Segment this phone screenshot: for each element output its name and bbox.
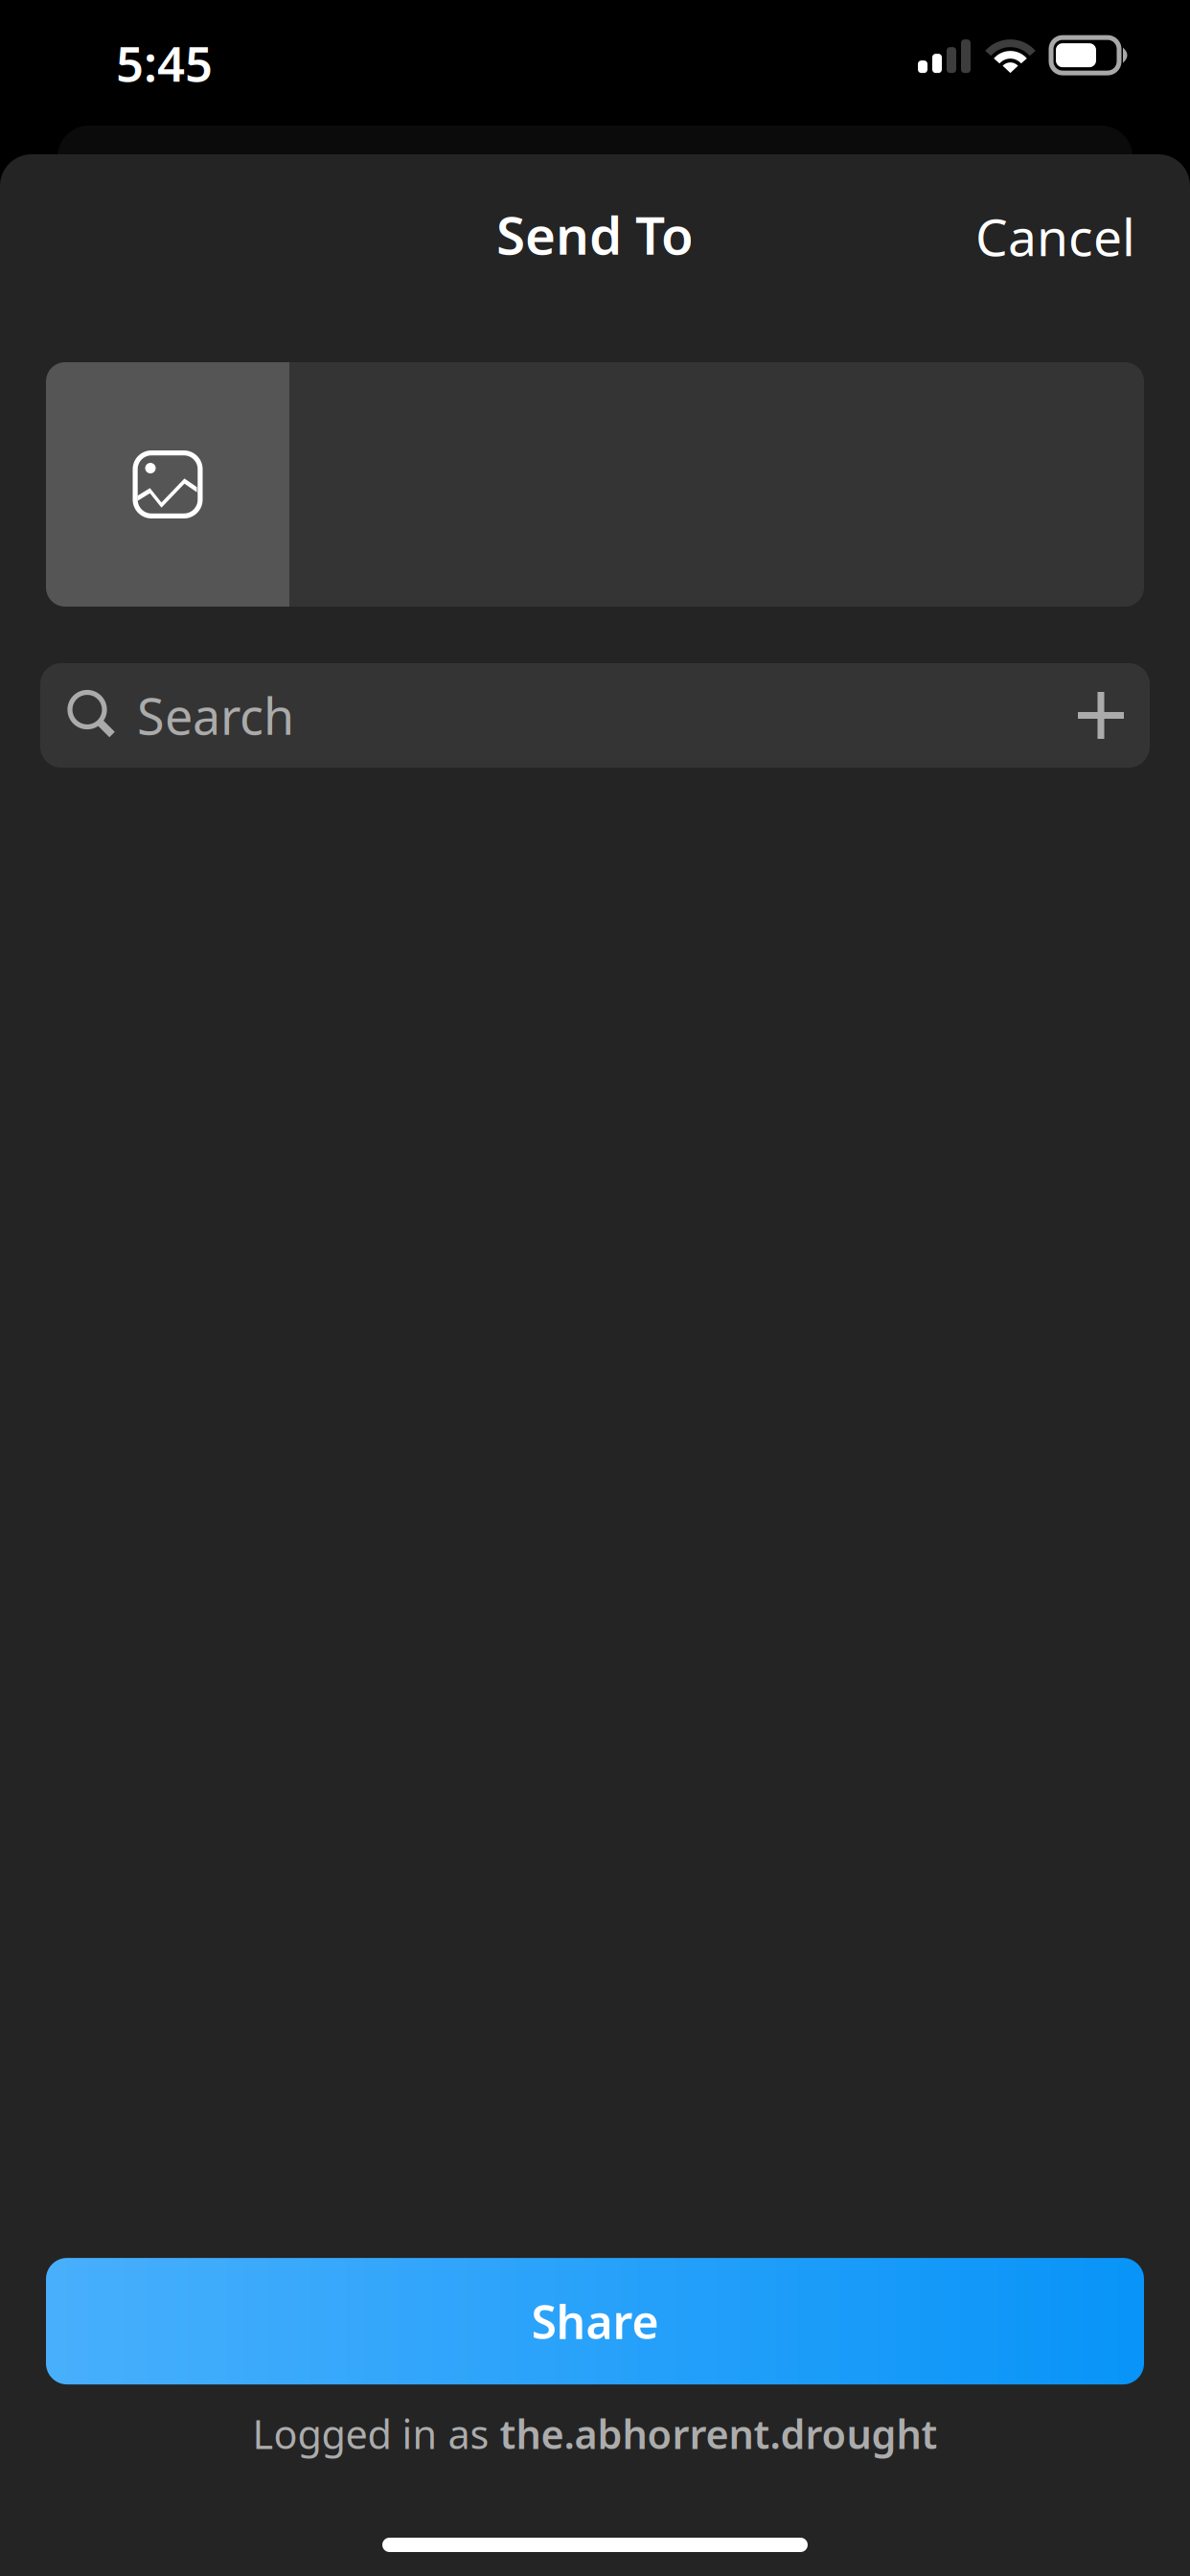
staticText: Logged in as xyxy=(252,2407,500,2460)
button[interactable]: Share xyxy=(0,2258,1190,2384)
staticText: Cancel xyxy=(975,202,1135,270)
staticText: Send To xyxy=(496,200,694,269)
staticText: the.abhorrent.drought xyxy=(500,2407,938,2460)
button[interactable]: Add recipient xyxy=(1048,667,1150,764)
button[interactable]: Write a message xyxy=(0,300,1190,607)
staticText: Share xyxy=(531,2291,659,2352)
staticText: Search xyxy=(137,682,294,749)
staticText: 5:45 xyxy=(116,31,213,95)
button[interactable]: Cancel xyxy=(952,186,1158,292)
